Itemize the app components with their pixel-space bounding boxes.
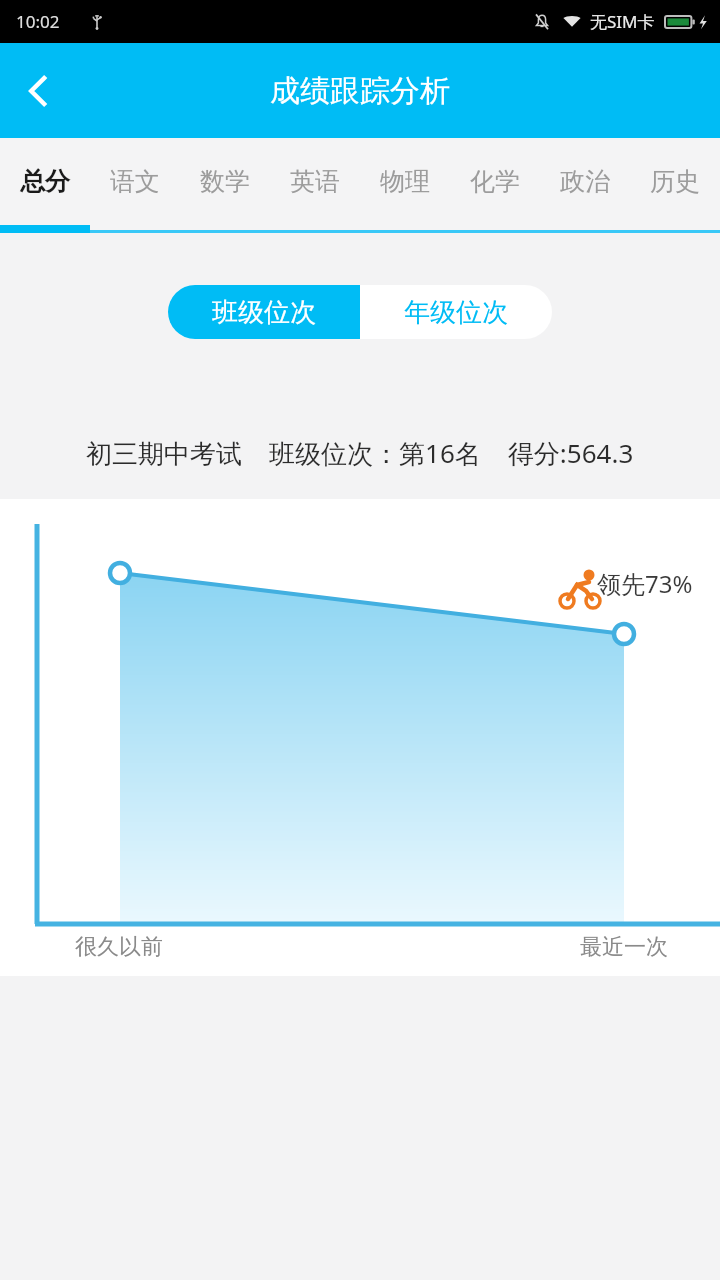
staticText: 数学: [200, 166, 250, 197]
staticText: 政治: [560, 166, 610, 197]
button[interactable]: 总分: [0, 138, 90, 225]
staticText: 英语: [290, 166, 340, 197]
staticText: 领先73%: [597, 567, 693, 600]
staticText: 成绩跟踪分析: [270, 72, 450, 110]
button[interactable]: Back: [0, 53, 76, 129]
button[interactable]: 年级位次: [360, 285, 552, 339]
staticText: 年级位次: [404, 296, 508, 329]
button[interactable]: 物理: [360, 138, 450, 225]
staticText: 语文: [110, 166, 160, 197]
staticText: 10:02: [16, 10, 60, 33]
staticText: 物理: [380, 166, 430, 197]
button[interactable]: 语文: [90, 138, 180, 225]
button[interactable]: 政治: [540, 138, 630, 225]
staticText: 总分: [20, 166, 70, 197]
button[interactable]: 数学: [180, 138, 270, 225]
staticText: 很久以前: [75, 933, 163, 961]
button[interactable]: 班级位次: [168, 285, 360, 339]
button[interactable]: 化学: [450, 138, 540, 225]
button[interactable]: 英语: [270, 138, 360, 225]
staticText: 化学: [470, 166, 520, 197]
staticText: 最近一次: [580, 933, 668, 961]
staticText: 无SIM卡: [590, 10, 655, 33]
button[interactable]: 历史: [630, 138, 720, 225]
staticText: 历史: [650, 166, 700, 197]
staticText: 初三期中考试 班级位次：第16名 得分:564.3: [86, 435, 634, 471]
staticText: 班级位次: [212, 296, 316, 329]
